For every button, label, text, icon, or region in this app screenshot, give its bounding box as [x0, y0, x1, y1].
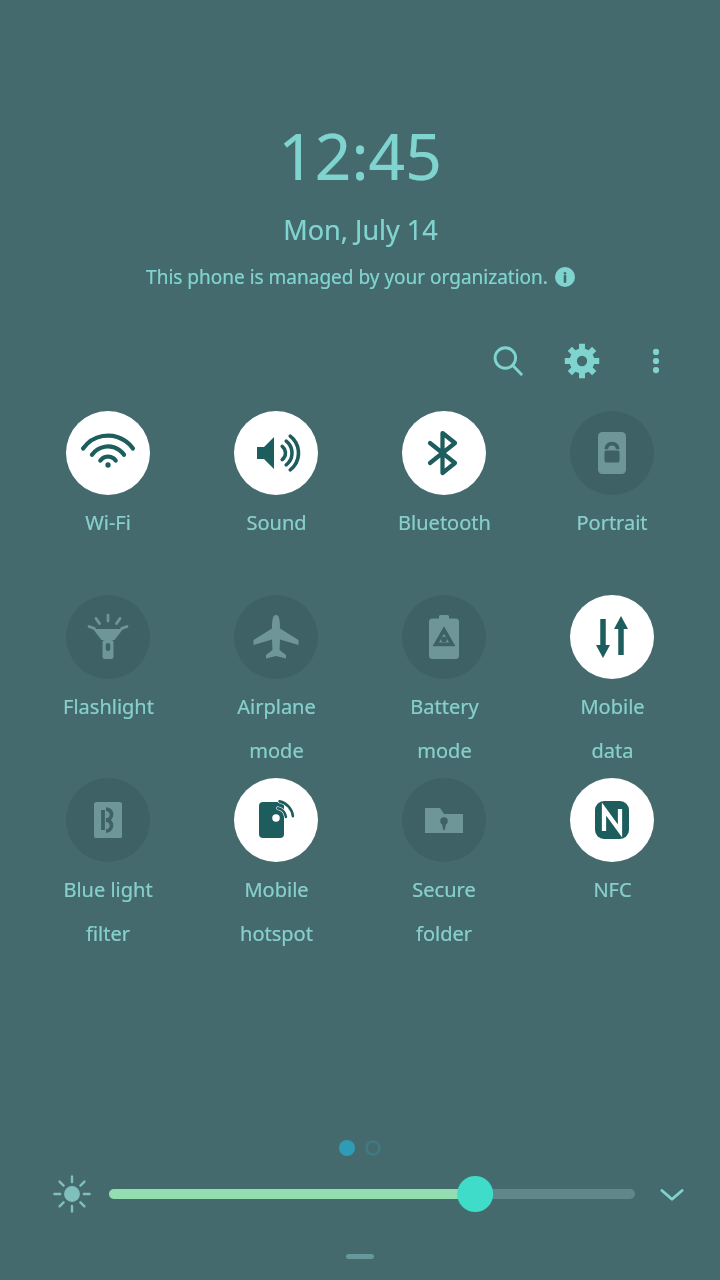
staticText: Mobile data — [580, 693, 645, 764]
button[interactable]: Battery mode — [360, 595, 528, 764]
button[interactable]: Brightness — [50, 1172, 94, 1216]
button[interactable]: Flashlight — [24, 595, 192, 720]
button[interactable]: Blue light filter — [24, 778, 192, 947]
button[interactable]: Wi-Fi — [24, 411, 192, 536]
staticText: Bluetooth — [398, 509, 491, 536]
button[interactable]: Mobile data — [528, 595, 696, 764]
button[interactable]: Portrait — [528, 411, 696, 536]
button[interactable]: Sound — [192, 411, 360, 536]
staticText: Airplane mode — [237, 693, 316, 764]
button[interactable]: Settings — [558, 337, 606, 385]
staticText: Mobile hotspot — [240, 876, 313, 947]
button[interactable]: Airplane mode — [192, 595, 360, 764]
button[interactable]: Expand — [650, 1172, 694, 1216]
button[interactable] — [114, 1174, 630, 1214]
button[interactable]: NFC — [528, 778, 696, 903]
staticText: NFC — [593, 876, 632, 903]
staticText: Battery mode — [410, 693, 479, 764]
staticText: Secure folder — [412, 876, 476, 947]
button[interactable]: More options — [632, 337, 680, 385]
staticText: This phone is managed by your organizati… — [146, 264, 548, 290]
staticText: Blue light filter — [63, 876, 153, 947]
staticText: Sound — [246, 509, 307, 536]
button[interactable]: Mobile hotspot — [192, 778, 360, 947]
staticText: Mon, July 14 — [283, 211, 438, 248]
staticText: Portrait — [576, 509, 648, 536]
button[interactable]: Secure folder — [360, 778, 528, 947]
button[interactable]: Bluetooth — [360, 411, 528, 536]
button[interactable]: Info — [555, 267, 575, 287]
button[interactable]: Search — [484, 337, 532, 385]
staticText: 12:45 — [278, 112, 442, 199]
staticText: Flashlight — [63, 693, 154, 720]
staticText: Wi-Fi — [85, 509, 131, 536]
